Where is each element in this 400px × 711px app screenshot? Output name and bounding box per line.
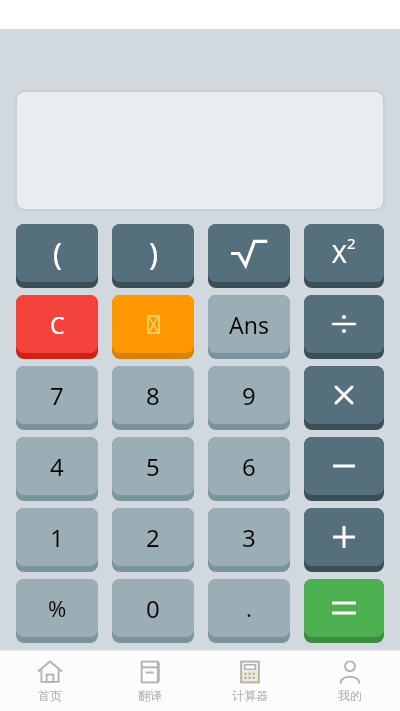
button[interactable]: x squared <box>304 224 384 288</box>
button[interactable]: 翻译 <box>100 651 200 711</box>
staticText: 3 <box>242 521 256 554</box>
staticText: 0 <box>146 592 160 625</box>
button[interactable]: Backspace <box>112 295 194 359</box>
button[interactable]: Square root <box>208 224 290 288</box>
button[interactable]: C <box>16 295 98 359</box>
button[interactable]: 2 <box>112 508 194 572</box>
staticText: 7 <box>50 379 64 412</box>
staticText: ( <box>53 233 62 274</box>
staticText: ) <box>149 233 158 274</box>
staticText: 我的 <box>338 688 362 703</box>
staticText: 翻译 <box>138 688 162 703</box>
staticText: 1 <box>50 521 64 554</box>
staticText: 8 <box>146 379 160 412</box>
button[interactable]: Equals <box>304 579 384 643</box>
staticText: Ans <box>229 309 269 340</box>
staticText: C <box>50 309 65 340</box>
button[interactable]: ( <box>16 224 98 288</box>
button[interactable]: 3 <box>208 508 290 572</box>
button[interactable]: Multiply <box>304 366 384 430</box>
button[interactable]: 8 <box>112 366 194 430</box>
button[interactable]: 1 <box>16 508 98 572</box>
button[interactable]: % <box>16 579 98 643</box>
button[interactable]: Ans <box>208 295 290 359</box>
staticText: % <box>48 593 67 623</box>
button[interactable]: 7 <box>16 366 98 430</box>
button[interactable]: 0 <box>112 579 194 643</box>
staticText: X <box>332 236 347 270</box>
staticText: . <box>246 593 252 623</box>
button[interactable]: Divide <box>304 295 384 359</box>
button[interactable]: . <box>208 579 290 643</box>
button[interactable]: Minus <box>304 437 384 501</box>
staticText: 6 <box>242 450 256 483</box>
staticText: 2 <box>347 233 356 253</box>
staticText: 2 <box>146 521 160 554</box>
button[interactable]: 我的 <box>300 651 400 711</box>
staticText: 9 <box>242 379 256 412</box>
staticText: 5 <box>146 450 160 483</box>
staticText: 4 <box>50 450 64 483</box>
button[interactable]: 首页 <box>0 651 100 711</box>
staticText: 计算器 <box>232 688 268 703</box>
button[interactable]: 计算器 <box>200 651 300 711</box>
button[interactable]: 4 <box>16 437 98 501</box>
staticText: 首页 <box>38 688 62 703</box>
button[interactable]: Plus <box>304 508 384 572</box>
button[interactable]: 5 <box>112 437 194 501</box>
button[interactable]: 6 <box>208 437 290 501</box>
button[interactable]: ) <box>112 224 194 288</box>
button[interactable]: 9 <box>208 366 290 430</box>
